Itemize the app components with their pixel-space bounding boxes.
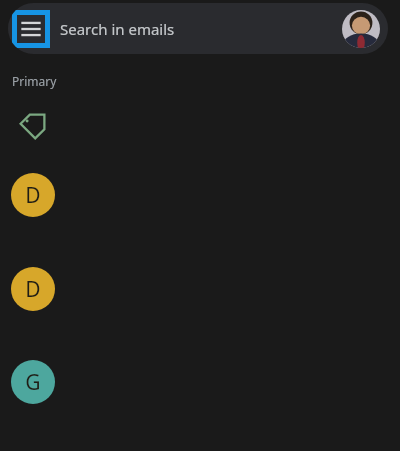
staticText: Primary	[12, 73, 57, 89]
staticText: Search in emails	[60, 19, 175, 39]
button[interactable]: D	[0, 255, 400, 323]
button[interactable]: Account	[342, 10, 380, 48]
button[interactable]: Open navigation drawer	[17, 15, 45, 43]
button[interactable]: D	[0, 161, 400, 229]
staticText: D	[25, 181, 41, 210]
button[interactable]: Open navigation drawer	[8, 3, 388, 54]
staticText: G	[25, 368, 41, 397]
button[interactable]: Label	[8, 102, 56, 150]
staticText: D	[25, 275, 41, 304]
button[interactable]: G	[0, 348, 400, 416]
